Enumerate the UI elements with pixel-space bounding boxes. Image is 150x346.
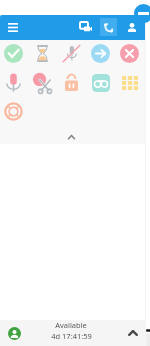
button[interactable]: Expand <box>121 320 145 346</box>
button[interactable]: Transfer <box>86 39 115 68</box>
button[interactable]: Share screen <box>75 15 96 40</box>
button[interactable]: Hang up <box>115 39 144 68</box>
button[interactable]: Dialpad <box>115 68 144 97</box>
button[interactable]: Collapse <box>57 130 86 143</box>
button[interactable]: Voicemail <box>86 68 115 97</box>
button[interactable]: Answer <box>0 39 28 68</box>
button[interactable]: Help <box>0 97 28 126</box>
button[interactable]: Presence <box>4 320 24 346</box>
button[interactable]: Minimise <box>134 4 150 23</box>
button[interactable]: Mute <box>57 39 86 68</box>
button[interactable]: Lock <box>57 68 86 97</box>
button[interactable]: Hold <box>28 39 57 68</box>
button[interactable]: Call <box>100 18 117 36</box>
staticText: 4d 17:41:59 <box>51 331 92 341</box>
button[interactable]: Menu <box>1 15 24 40</box>
staticText: Available <box>55 320 87 330</box>
button[interactable]: Contacts <box>122 15 142 40</box>
button[interactable]: Record <box>0 68 28 97</box>
button[interactable]: Split call <box>28 68 57 97</box>
